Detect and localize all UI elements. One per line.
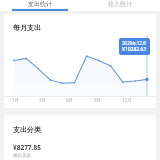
staticText: 6月 <box>66 97 94 103</box>
staticText: 12月 <box>122 97 150 103</box>
button[interactable]: 支出分类 <box>4 115 156 160</box>
staticText: ¥10282.63 <box>122 46 147 53</box>
staticText: 餐饮美食 <box>13 153 31 159</box>
staticText: 9月 <box>94 97 122 103</box>
staticText: 每月支出 <box>13 23 41 32</box>
button[interactable]: 2020年12月 <box>119 38 150 55</box>
staticText: 支出分类 <box>13 125 41 134</box>
button[interactable]: 收入统计 <box>80 0 160 11</box>
button[interactable]: 每月支出 <box>4 14 156 108</box>
staticText: 3月 <box>39 97 66 103</box>
staticText: 1月 <box>12 97 39 103</box>
button[interactable]: 支出统计 <box>0 0 80 11</box>
staticText: 收入统计 <box>108 0 132 8</box>
staticText: 支出统计 <box>28 0 52 8</box>
staticText: ¥8277.85 <box>13 143 41 152</box>
staticText: 2020年12月 <box>122 40 147 46</box>
